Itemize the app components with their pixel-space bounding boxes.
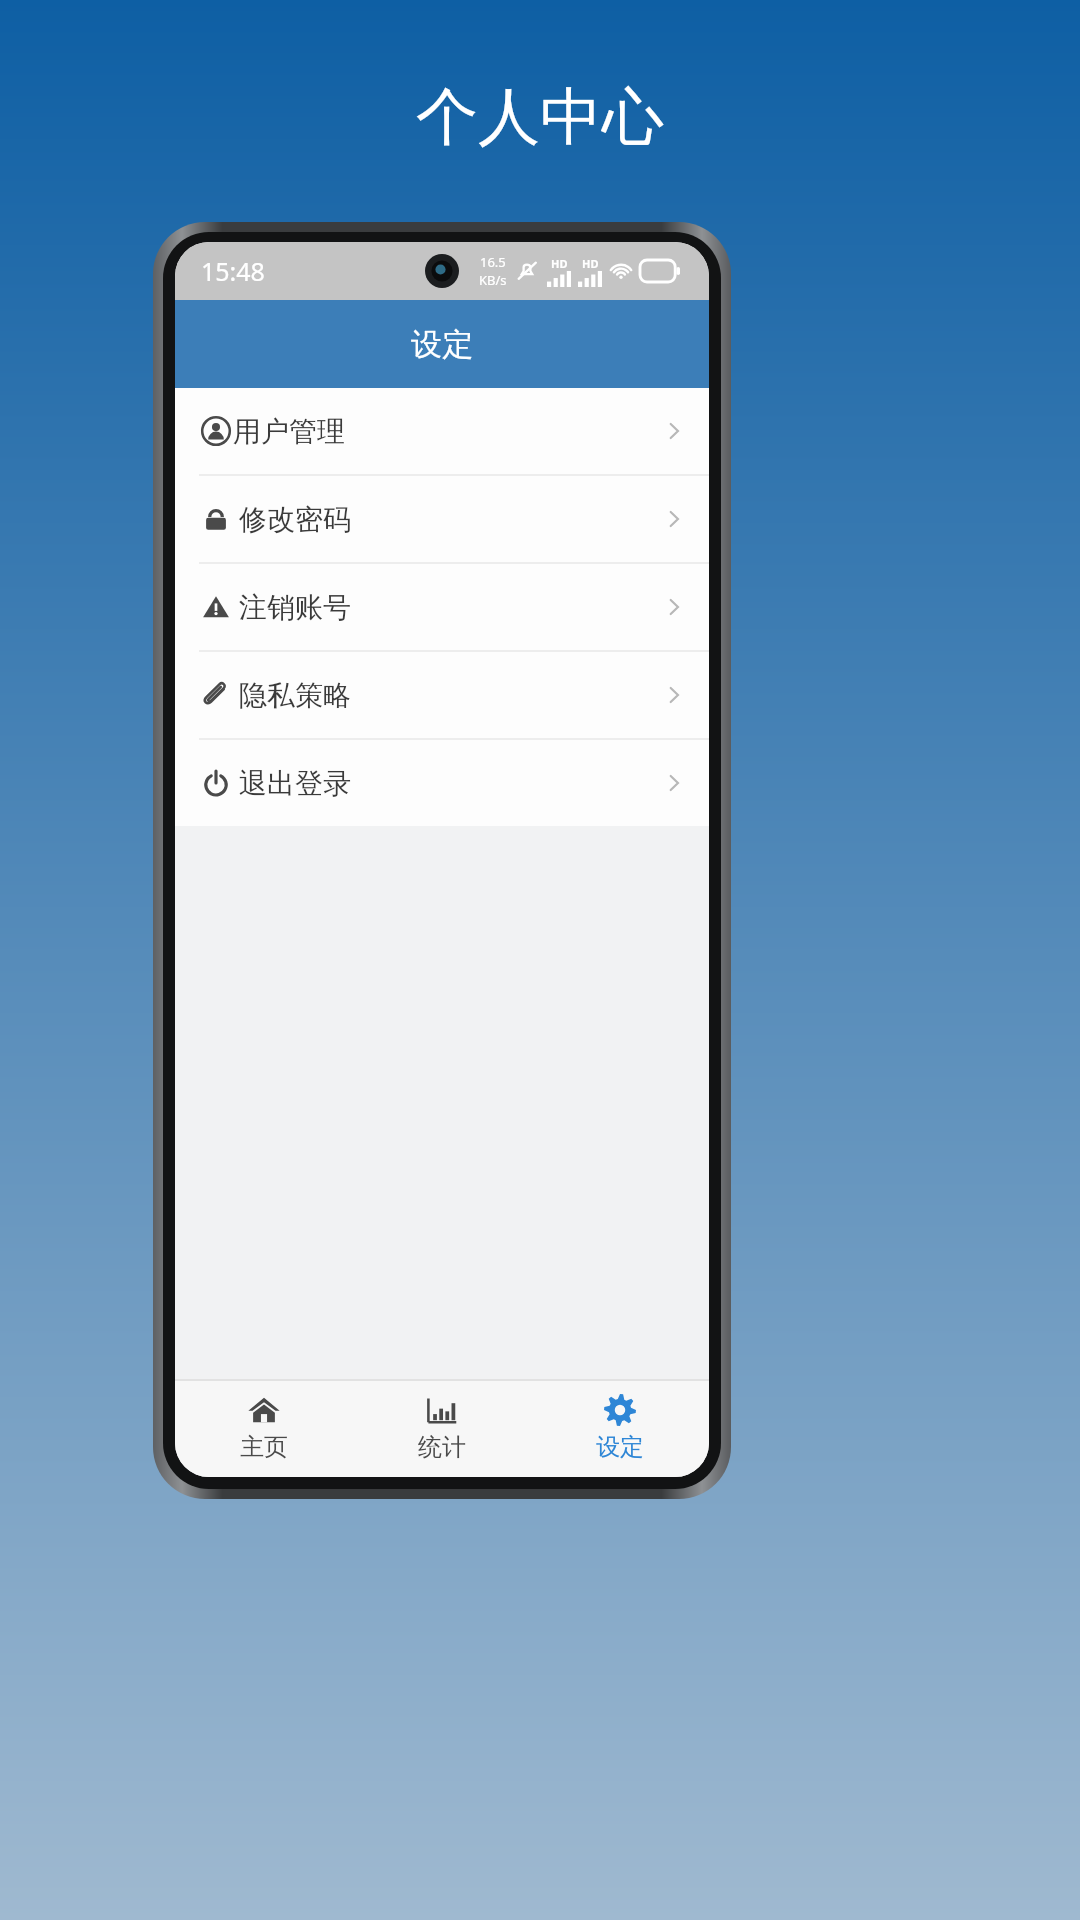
staticText: 注销账号 — [239, 590, 351, 625]
staticText: 15:48 — [201, 254, 265, 288]
button[interactable]: 注销账号 — [175, 564, 709, 650]
button[interactable]: 统计 — [353, 1381, 531, 1477]
button[interactable]: 隐私策略 — [175, 652, 709, 738]
button[interactable]: 用户管理 — [175, 388, 709, 474]
staticText: 修改密码 — [239, 502, 351, 537]
staticText: 设定 — [411, 325, 473, 364]
staticText: 退出登录 — [239, 766, 351, 801]
button[interactable]: 退出登录 — [175, 740, 709, 826]
staticText: 设定 — [596, 1432, 644, 1462]
button[interactable]: 主页 — [175, 1381, 353, 1477]
staticText: HD — [551, 256, 568, 271]
button[interactable]: 设定 — [531, 1381, 709, 1477]
staticText: HD — [582, 256, 599, 271]
staticText: 统计 — [418, 1432, 466, 1462]
staticText: 个人中心 — [416, 78, 664, 156]
staticText: KB/s — [479, 271, 507, 289]
staticText: 用户管理 — [233, 414, 345, 449]
staticText: 16.5 — [480, 253, 506, 271]
button[interactable]: 修改密码 — [175, 476, 709, 562]
staticText: 隐私策略 — [239, 678, 351, 713]
staticText: 主页 — [240, 1432, 288, 1462]
